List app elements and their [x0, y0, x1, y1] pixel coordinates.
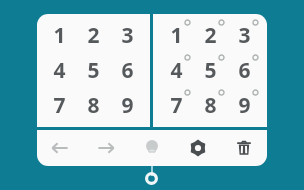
button[interactable]: 4 — [159, 53, 193, 88]
button[interactable]: 2 — [76, 18, 110, 53]
button[interactable]: Next — [83, 130, 129, 166]
staticText: 6 — [238, 56, 251, 85]
button[interactable]: Previous — [37, 130, 83, 166]
staticText: 2 — [87, 21, 100, 50]
staticText: 8 — [204, 91, 217, 120]
staticText: 1 — [53, 21, 66, 50]
button[interactable]: 6 — [110, 53, 144, 88]
button[interactable]: 7 — [159, 88, 193, 123]
button[interactable]: 5 — [193, 53, 227, 88]
button[interactable]: 8 — [76, 88, 110, 123]
button[interactable]: 1 — [159, 18, 193, 53]
staticText: 7 — [170, 91, 183, 120]
button[interactable]: 7 — [43, 88, 76, 123]
staticText: 5 — [87, 56, 100, 85]
staticText: 7 — [53, 91, 66, 120]
button[interactable]: 9 — [110, 88, 144, 123]
staticText: 1 — [170, 21, 183, 50]
button[interactable]: Settings — [175, 130, 221, 166]
staticText: 9 — [238, 91, 251, 120]
staticText: 3 — [121, 21, 134, 50]
staticText: 9 — [121, 91, 134, 120]
staticText: 3 — [238, 21, 251, 50]
button[interactable]: 6 — [227, 53, 261, 88]
staticText: 2 — [204, 21, 217, 50]
button[interactable]: 9 — [227, 88, 261, 123]
staticText: 4 — [170, 56, 183, 85]
button[interactable]: 5 — [76, 53, 110, 88]
button[interactable]: 8 — [193, 88, 227, 123]
button[interactable]: Hint — [129, 130, 175, 166]
button[interactable]: 3 — [227, 18, 261, 53]
staticText: 6 — [121, 56, 134, 85]
staticText: 8 — [87, 91, 100, 120]
staticText: 4 — [53, 56, 66, 85]
button[interactable]: 1 — [43, 18, 76, 53]
staticText: 5 — [204, 56, 217, 85]
button[interactable]: 3 — [110, 18, 144, 53]
button[interactable]: 2 — [193, 18, 227, 53]
button[interactable]: 4 — [43, 53, 76, 88]
button[interactable]: Delete — [221, 130, 267, 166]
